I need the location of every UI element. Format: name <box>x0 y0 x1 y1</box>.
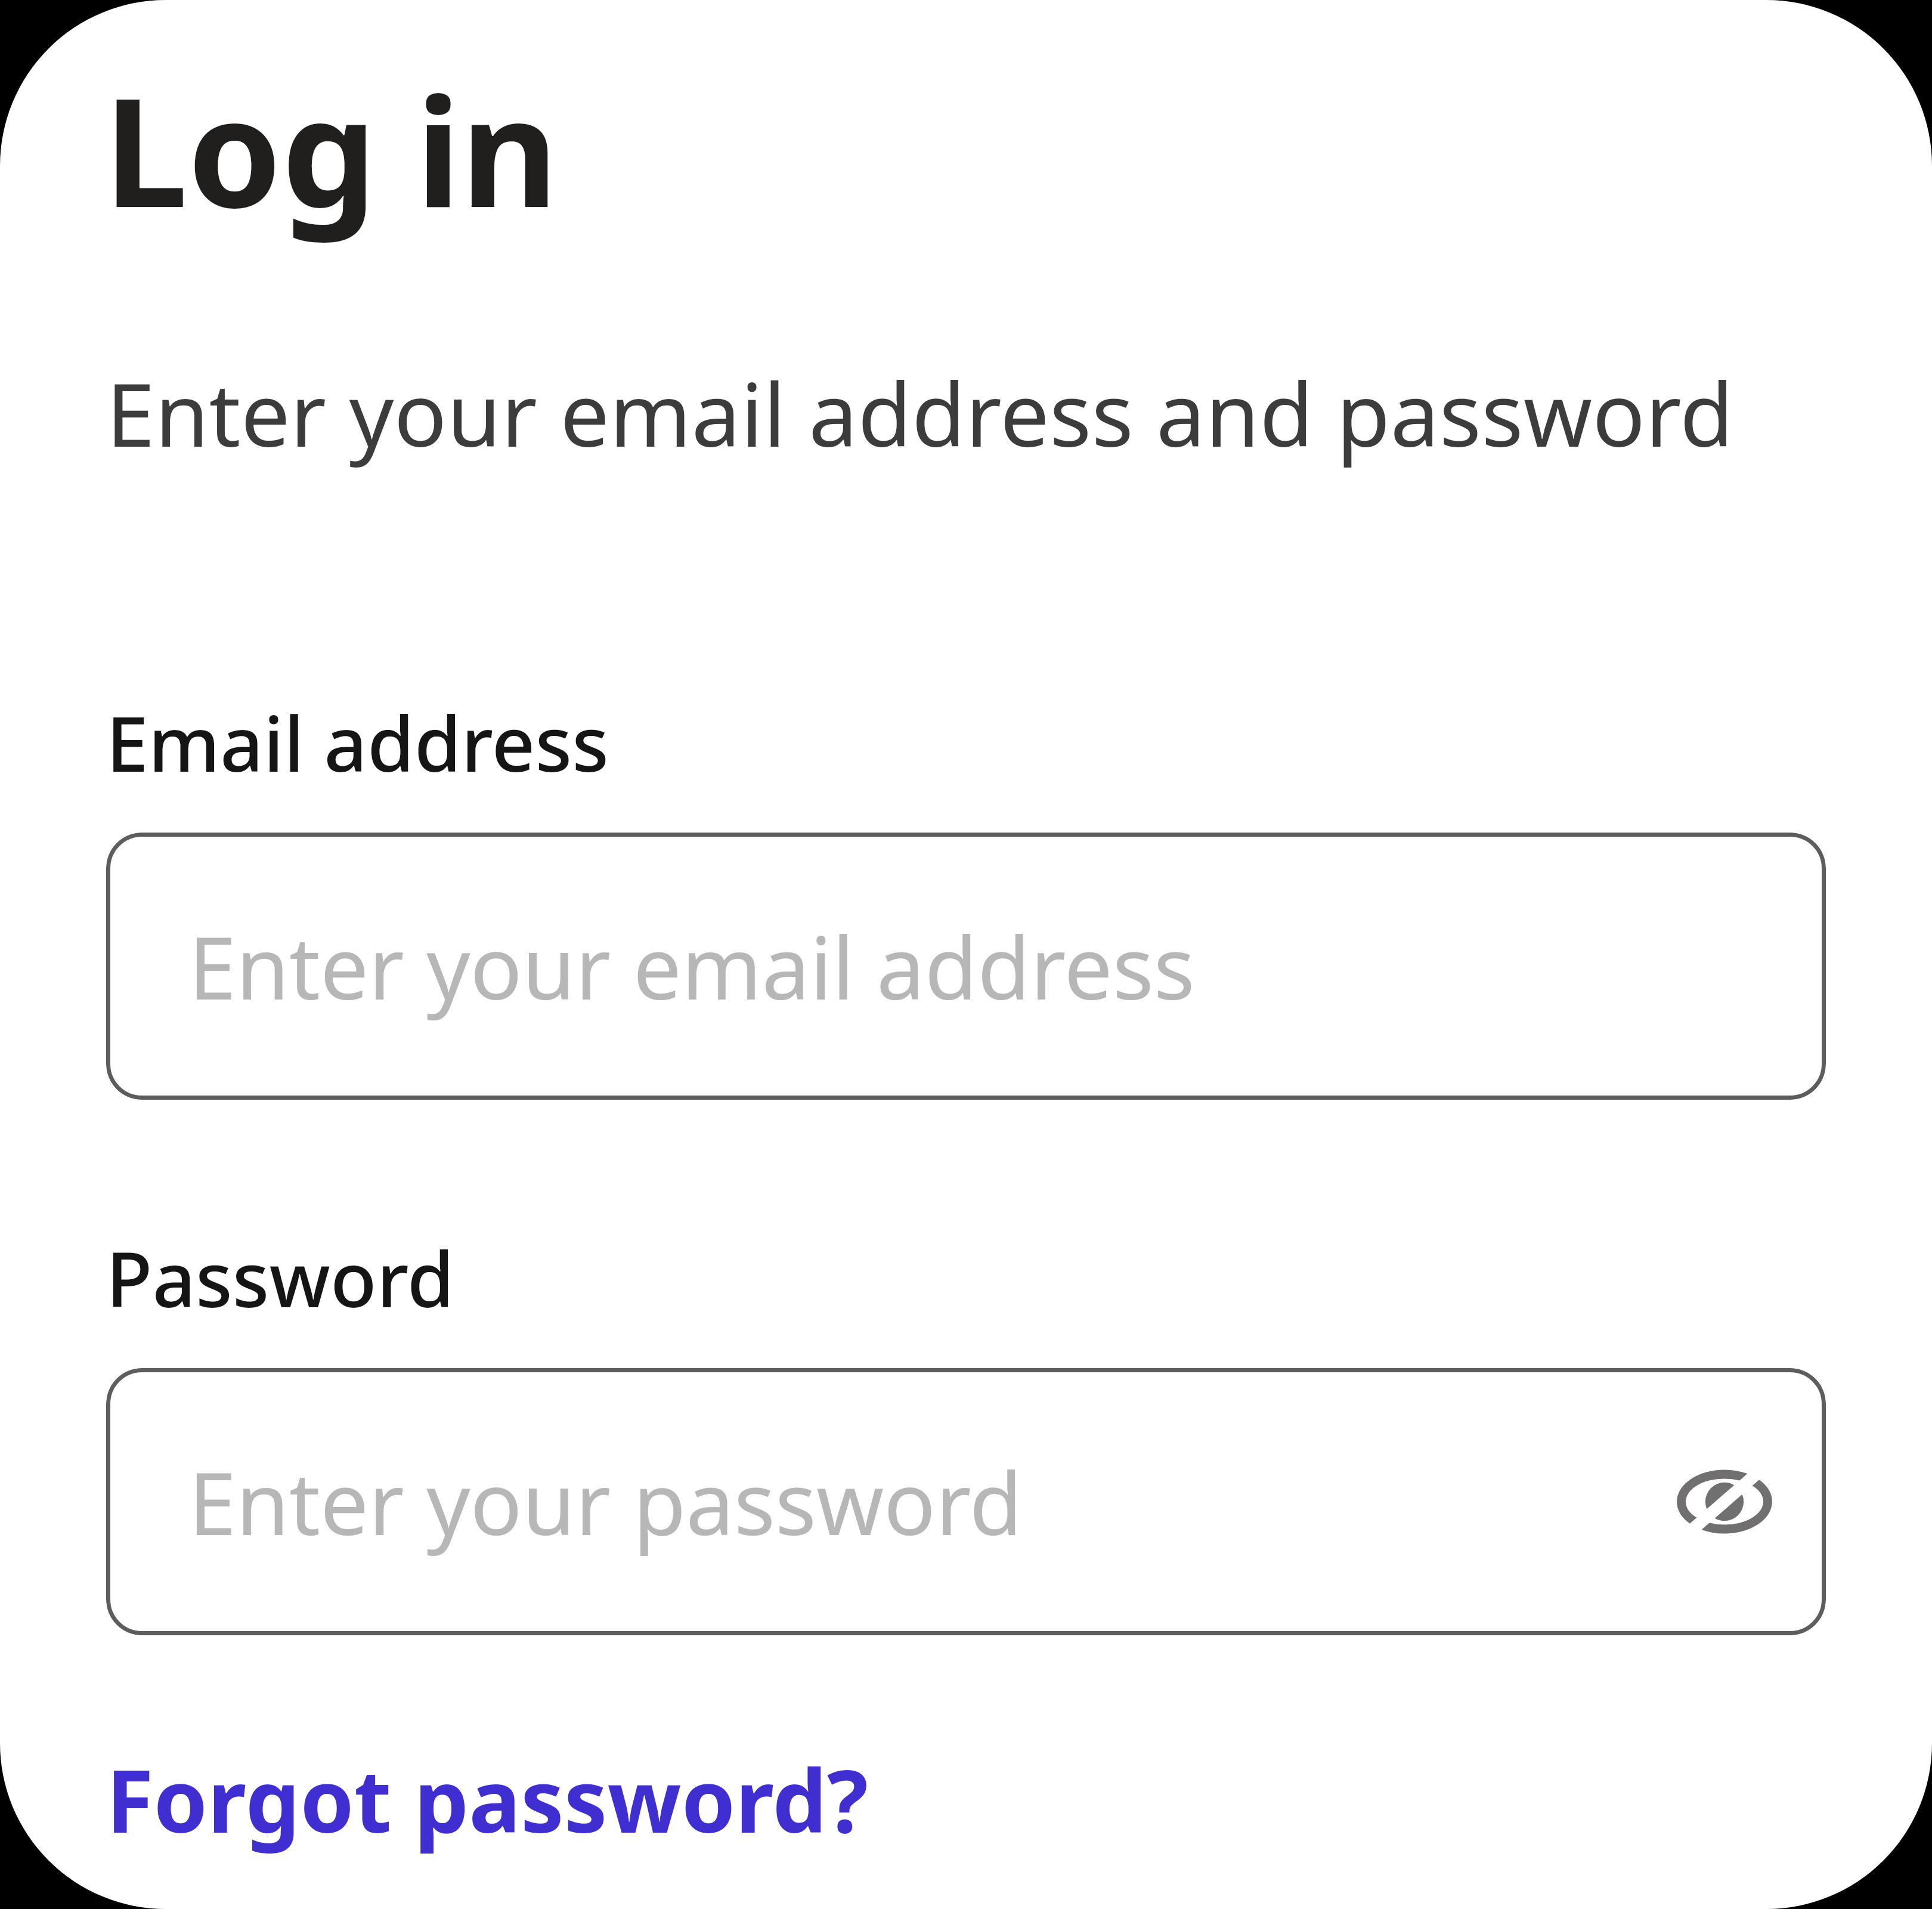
staticText: Password <box>106 1226 454 1329</box>
button[interactable]: Enter your password <box>106 1368 1826 1635</box>
button[interactable]: Show password <box>1665 1442 1784 1561</box>
staticText: Log in <box>104 47 559 251</box>
staticText: Forgot password? <box>106 1740 869 1858</box>
staticText: Email address <box>106 691 609 794</box>
staticText: Enter your password <box>188 1443 1023 1560</box>
staticText: Enter your email address and password <box>106 353 1734 472</box>
button[interactable]: Enter your email address <box>106 833 1826 1100</box>
staticText: Enter your email address <box>188 908 1195 1025</box>
button[interactable]: Forgot password? <box>101 1737 874 1861</box>
